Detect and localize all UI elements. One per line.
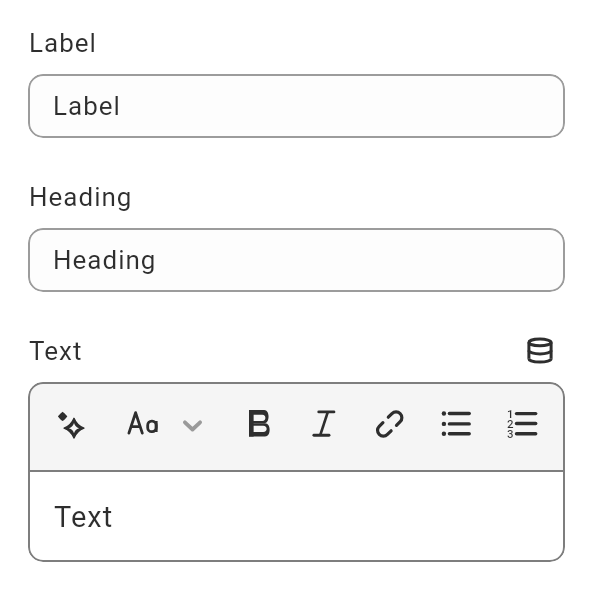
staticText: Heading <box>53 245 157 275</box>
button[interactable]: Heading <box>28 228 565 292</box>
button[interactable]: Bulleted list <box>435 403 477 445</box>
staticText: 1 <box>507 407 514 420</box>
staticText: Heading <box>29 182 133 212</box>
button[interactable]: Bold <box>240 403 280 445</box>
staticText: Text <box>29 336 83 366</box>
button[interactable]: Numbered list <box>500 403 544 445</box>
staticText: 3 <box>507 427 514 440</box>
button[interactable]: Text <box>28 472 565 562</box>
staticText: Label <box>29 28 97 58</box>
button[interactable]: AI assist <box>51 401 97 443</box>
button[interactable]: Italic <box>303 403 343 445</box>
button[interactable]: Choose text style <box>175 407 211 449</box>
button[interactable]: Label <box>28 74 565 138</box>
button[interactable]: Data source <box>523 333 557 367</box>
staticText: 2 <box>507 417 514 430</box>
staticText: Text <box>54 500 114 534</box>
staticText: Label <box>53 91 121 121</box>
button[interactable]: Link <box>367 403 409 445</box>
button[interactable]: Text style <box>119 403 167 445</box>
